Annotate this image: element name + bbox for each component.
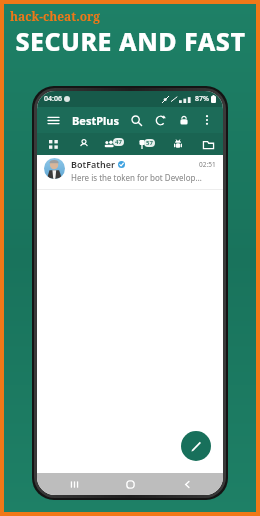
button[interactable]: Refresh xyxy=(151,111,169,129)
staticText: 02:51 xyxy=(199,160,216,169)
button[interactable]: Home xyxy=(110,473,150,495)
button[interactable]: More options xyxy=(198,111,216,129)
staticText: 47 xyxy=(115,138,122,146)
button[interactable]: Profile xyxy=(69,133,99,155)
button[interactable]: Folders xyxy=(194,133,222,155)
button[interactable]: Groups, 47 new xyxy=(100,133,130,155)
button[interactable]: Dashboard xyxy=(38,133,68,155)
button[interactable]: Bots xyxy=(163,133,193,155)
button[interactable]: Lock xyxy=(175,111,193,129)
staticText: BestPlus xyxy=(72,113,119,128)
staticText: 87% xyxy=(195,94,209,104)
button[interactable]: Open navigation drawer xyxy=(44,111,62,129)
button[interactable]: Back xyxy=(167,473,207,495)
staticText: SECURE AND FAST xyxy=(15,24,246,58)
button[interactable]: Recent apps xyxy=(54,473,94,495)
staticText: BotFather xyxy=(71,158,115,170)
staticText: 04:06 xyxy=(44,94,62,104)
button[interactable]: BotFather xyxy=(37,155,223,189)
staticText: 57 xyxy=(146,139,153,147)
button[interactable]: Search xyxy=(127,111,145,129)
staticText: hack-cheat.org xyxy=(10,8,101,24)
staticText: Here is the token for bot Develop… xyxy=(71,172,202,183)
button[interactable]: Reports, 57 new xyxy=(132,133,162,155)
button[interactable]: Compose new message xyxy=(181,431,211,461)
